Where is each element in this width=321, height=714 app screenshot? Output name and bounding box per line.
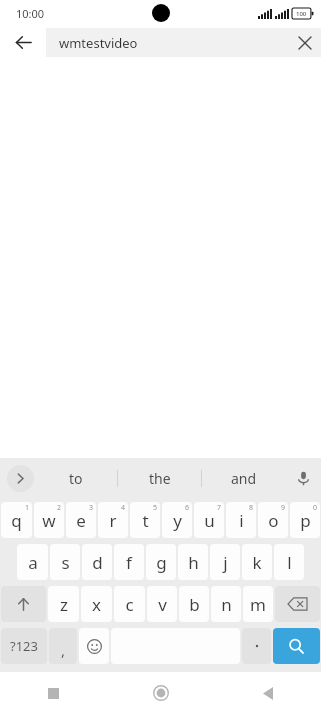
button[interactable]: z (48, 586, 79, 622)
staticText: ?123 (10, 637, 38, 655)
staticText: 100 (296, 10, 307, 18)
button[interactable]: Back (0, 26, 46, 59)
button[interactable]: 5 (130, 502, 160, 538)
button[interactable]: x (81, 586, 112, 622)
button[interactable]: Voice input (285, 458, 321, 499)
button[interactable]: k (242, 544, 272, 580)
staticText: 10:00 (16, 6, 45, 21)
staticText: l (287, 551, 292, 574)
button[interactable]: c (114, 586, 145, 622)
button[interactable]: 2 (34, 502, 64, 538)
staticText: n (221, 593, 232, 616)
staticText: 8 (249, 503, 254, 513)
staticText: d (92, 551, 103, 574)
staticText: 9 (281, 503, 286, 513)
button[interactable]: 0 (290, 502, 320, 538)
button[interactable]: ?123 (1, 628, 47, 664)
staticText: v (158, 593, 167, 616)
button[interactable]: h (178, 544, 208, 580)
staticText: u (204, 509, 215, 532)
staticText: y (173, 509, 182, 532)
button[interactable]: Shift (1, 586, 46, 622)
staticText: x (92, 593, 101, 616)
staticText: s (61, 551, 70, 574)
staticText: 0 (313, 503, 318, 513)
staticText: 7 (217, 503, 222, 513)
button[interactable]: n (211, 586, 241, 622)
button[interactable]: to (34, 458, 117, 499)
staticText: j (223, 551, 228, 574)
staticText: o (268, 509, 279, 532)
button[interactable]: j (210, 544, 240, 580)
staticText: 3 (89, 503, 94, 513)
button[interactable]: and (202, 458, 285, 499)
staticText: and (231, 469, 257, 488)
staticText: z (60, 593, 68, 616)
staticText: k (252, 551, 262, 574)
button[interactable]: 1 (1, 502, 32, 538)
button[interactable]: 6 (162, 502, 192, 538)
button[interactable]: Clear (289, 28, 321, 57)
staticText: e (76, 509, 86, 532)
button[interactable]: the (118, 458, 201, 499)
button[interactable]: b (179, 586, 209, 622)
button[interactable] (242, 628, 271, 664)
button[interactable]: f (114, 544, 144, 580)
button[interactable]: More suggestions (7, 465, 34, 492)
button[interactable]: m (243, 586, 273, 622)
staticText: 1 (25, 503, 30, 513)
button[interactable]: Home (107, 672, 214, 714)
button[interactable]: Backspace (275, 586, 320, 622)
button[interactable]: 4 (98, 502, 128, 538)
staticText: b (189, 593, 200, 616)
staticText: to (69, 469, 83, 488)
button[interactable]: Recents (0, 672, 107, 714)
button[interactable]: 9 (258, 502, 288, 538)
button[interactable]: , (49, 628, 77, 664)
button[interactable]: wmtestvideo (46, 28, 321, 57)
button[interactable]: Search (273, 628, 320, 664)
button[interactable]: Emoji (79, 628, 109, 664)
staticText: h (188, 551, 199, 574)
staticText: wmtestvideo (59, 34, 289, 52)
staticText: r (109, 509, 117, 532)
staticText: , (61, 640, 66, 660)
staticText: 5 (153, 503, 158, 513)
staticText: t (142, 509, 149, 532)
button[interactable]: 7 (194, 502, 224, 538)
staticText: i (239, 509, 244, 532)
button[interactable]: 3 (66, 502, 96, 538)
staticText: p (300, 509, 311, 532)
button[interactable]: a (17, 544, 48, 580)
staticText: 2 (57, 503, 62, 513)
staticText: f (126, 551, 132, 574)
button[interactable]: g (146, 544, 176, 580)
staticText: a (28, 551, 38, 574)
staticText: 4 (121, 503, 126, 513)
button[interactable]: 8 (226, 502, 256, 538)
staticText: m (250, 593, 266, 616)
button[interactable]: l (274, 544, 304, 580)
staticText: g (156, 551, 167, 574)
staticText: the (149, 469, 171, 488)
button[interactable]: Back (214, 672, 321, 714)
staticText: c (125, 593, 134, 616)
button[interactable]: d (82, 544, 112, 580)
staticText: 6 (185, 503, 190, 513)
staticText: q (11, 509, 22, 532)
button[interactable]: v (147, 586, 177, 622)
button[interactable]: s (50, 544, 80, 580)
staticText: w (42, 509, 56, 532)
